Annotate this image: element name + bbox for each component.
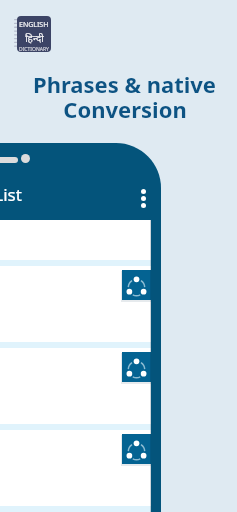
button[interactable]: Share — [0, 266, 151, 348]
staticText: Word List — [0, 183, 22, 206]
button[interactable]: Share — [0, 220, 151, 266]
staticText: ENGLISH — [19, 20, 49, 30]
button[interactable]: Share — [0, 348, 151, 430]
staticText: DICTIONARY — [19, 46, 49, 52]
staticText: Phrases & native — [33, 69, 216, 99]
button[interactable]: Share — [122, 434, 151, 464]
staticText: Conversion — [63, 94, 187, 124]
button[interactable]: More options — [137, 185, 150, 212]
button[interactable]: Share — [122, 270, 151, 300]
staticText: हिन्दी — [25, 31, 44, 45]
button[interactable]: Share — [122, 352, 151, 382]
button[interactable]: Share — [0, 430, 151, 512]
